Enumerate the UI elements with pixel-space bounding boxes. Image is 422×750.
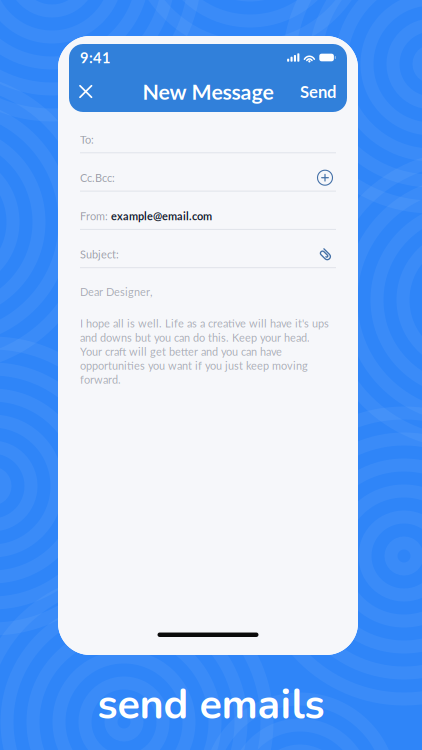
staticText: Cc.Bcc: [80,171,115,184]
button[interactable]: Add recipient [314,167,336,189]
staticText: 9:41 [80,49,111,66]
staticText: From: [80,209,111,222]
staticText: Dear Designer, [80,285,152,298]
staticText: send emails [97,677,324,733]
button[interactable]: Close [80,74,130,108]
staticText: Subject: [80,248,119,261]
staticText: example@email.com [111,209,212,222]
button[interactable]: Attach file [314,243,336,265]
button[interactable]: Send [286,74,336,108]
staticText: New Message [142,79,273,104]
staticText: I hope all is well. Life as a creative w… [80,317,329,386]
staticText: To: [80,133,94,146]
staticText: Send [300,81,336,101]
